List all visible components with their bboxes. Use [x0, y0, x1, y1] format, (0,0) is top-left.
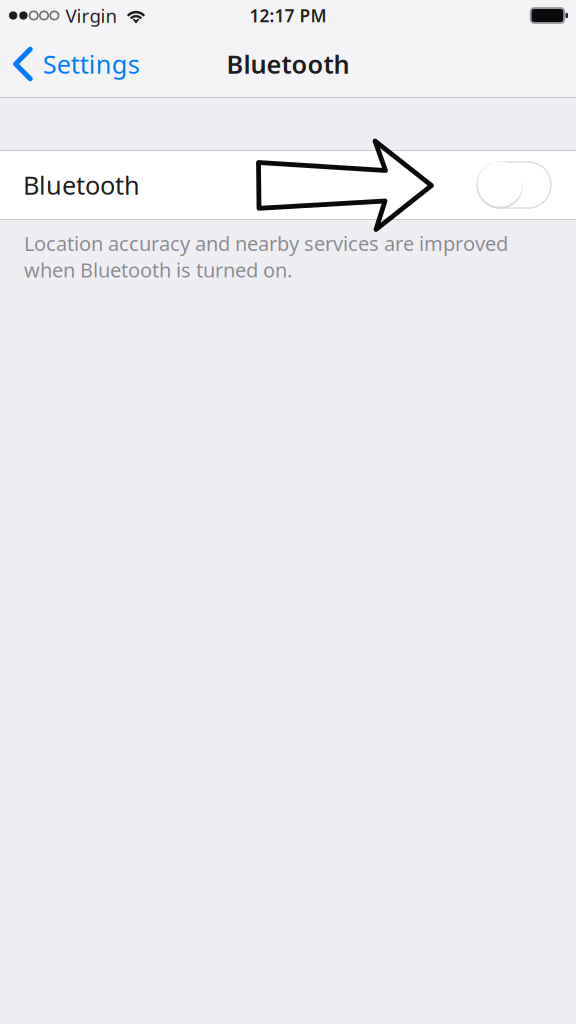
staticText: 12:17 PM [249, 4, 326, 27]
staticText: Bluetooth [23, 168, 140, 202]
staticText: Bluetooth [226, 47, 349, 81]
staticText: Virgin [65, 3, 117, 28]
button[interactable]: Bluetooth, off [477, 162, 551, 208]
button[interactable]: Settings [0, 31, 154, 97]
staticText: Location accuracy and nearby services ar… [24, 230, 508, 257]
staticText: when Bluetooth is turned on. [24, 257, 292, 283]
staticText: Settings [43, 47, 140, 81]
